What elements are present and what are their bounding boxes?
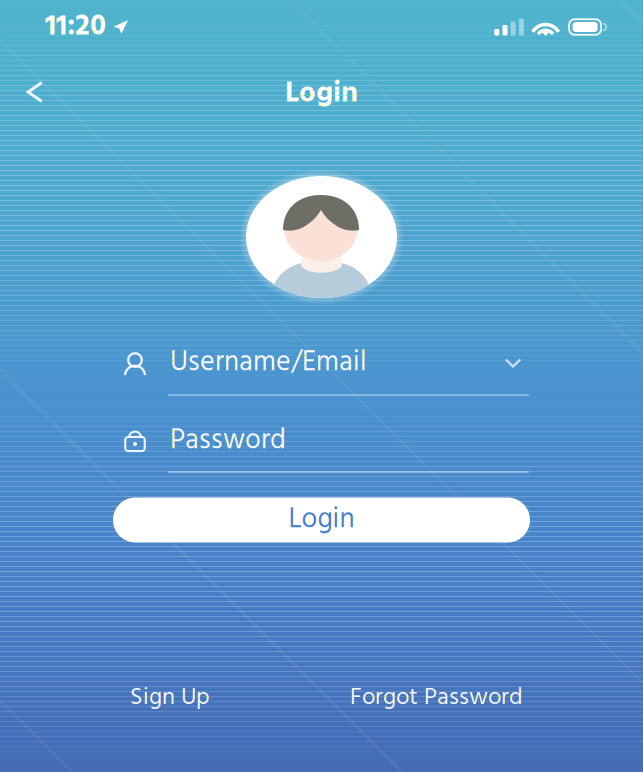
staticText: Login xyxy=(285,70,358,117)
staticText: Username/Email xyxy=(170,341,367,385)
button[interactable]: Login xyxy=(113,497,530,542)
staticText: 11:20 xyxy=(45,3,106,50)
button[interactable]: Forgot Password xyxy=(340,668,533,728)
staticText: Password xyxy=(170,419,286,463)
staticText: Login xyxy=(288,498,354,542)
staticText: Sign Up xyxy=(130,679,210,717)
button[interactable]: Back xyxy=(13,69,56,115)
button[interactable]: Choose saved account xyxy=(493,346,532,380)
button[interactable]: Sign Up xyxy=(120,668,220,728)
staticText: Forgot Password xyxy=(350,679,523,717)
